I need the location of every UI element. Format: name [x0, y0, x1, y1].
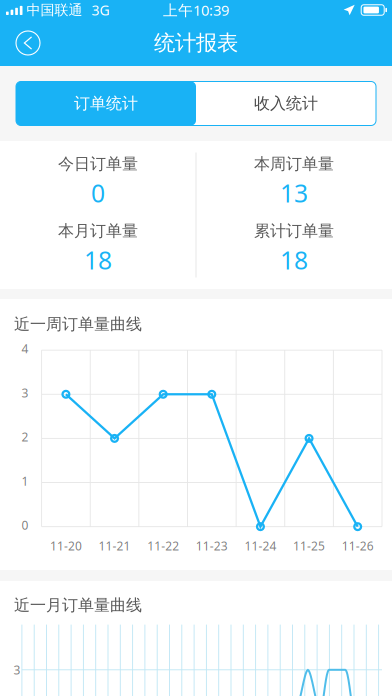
staticText: 累计订单量 — [254, 221, 334, 241]
staticText: 0 — [91, 176, 105, 210]
staticText: 今日订单量 — [58, 154, 138, 174]
staticText: 本月订单量 — [58, 221, 138, 241]
staticText: 11-21 — [98, 538, 130, 554]
staticText: 近一周订单量曲线 — [14, 314, 142, 334]
button[interactable]: 收入统计 — [196, 81, 376, 125]
staticText: 上午10:39 — [163, 0, 229, 20]
staticText: 11-25 — [293, 538, 325, 554]
staticText: 订单统计 — [74, 93, 138, 114]
staticText: 11-22 — [147, 538, 179, 554]
staticText: 统计报表 — [154, 30, 238, 56]
button[interactable]: Back — [0, 21, 52, 65]
staticText: 收入统计 — [254, 93, 318, 114]
staticText: 2 — [22, 429, 29, 445]
staticText: 4 — [22, 340, 29, 357]
staticText: 11-26 — [342, 538, 374, 554]
staticText: 18 — [84, 243, 112, 277]
staticText: 11-23 — [196, 538, 228, 554]
staticText: 18 — [280, 243, 308, 277]
staticText: 3G — [91, 0, 109, 20]
staticText: 3 — [22, 385, 29, 401]
staticText: 中国联通 — [26, 1, 82, 19]
staticText: 近一月订单量曲线 — [14, 595, 142, 615]
staticText: 11-20 — [50, 538, 82, 554]
staticText: 13 — [280, 176, 308, 210]
staticText: 3 — [13, 662, 20, 678]
staticText: 本周订单量 — [254, 154, 334, 174]
button[interactable]: 订单统计 — [16, 81, 196, 125]
staticText: 0 — [22, 517, 29, 533]
staticText: 11-24 — [244, 538, 276, 554]
staticText: 1 — [22, 473, 29, 489]
